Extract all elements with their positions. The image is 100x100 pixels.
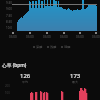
staticText: 03:00 (43, 35, 51, 39)
staticText: 03:00 (26, 35, 34, 39)
staticText: 7:30 (6, 14, 12, 18)
staticText: 10:0 (6, 26, 12, 30)
staticText: 173 (70, 72, 81, 80)
staticText: 深睡 (36, 45, 43, 49)
staticText: 平均 (22, 80, 28, 84)
staticText: 03:00 (76, 35, 84, 39)
staticText: 126 (20, 72, 31, 80)
staticText: 03:00 (60, 35, 68, 39)
staticText: 03:00 (9, 35, 17, 39)
staticText: 100 (5, 91, 10, 95)
staticText: 清醒 (64, 45, 71, 49)
staticText: 03:00 (92, 35, 100, 39)
staticText: 200 (5, 84, 10, 88)
staticText: 浅睡 (50, 45, 57, 49)
staticText: 心率 (bpm) (2, 62, 27, 69)
staticText: 最大 (72, 80, 78, 84)
staticText: 9:00 (6, 7, 12, 11)
staticText: 9:30 (6, 1, 12, 5)
staticText: 8:30 (6, 20, 12, 24)
